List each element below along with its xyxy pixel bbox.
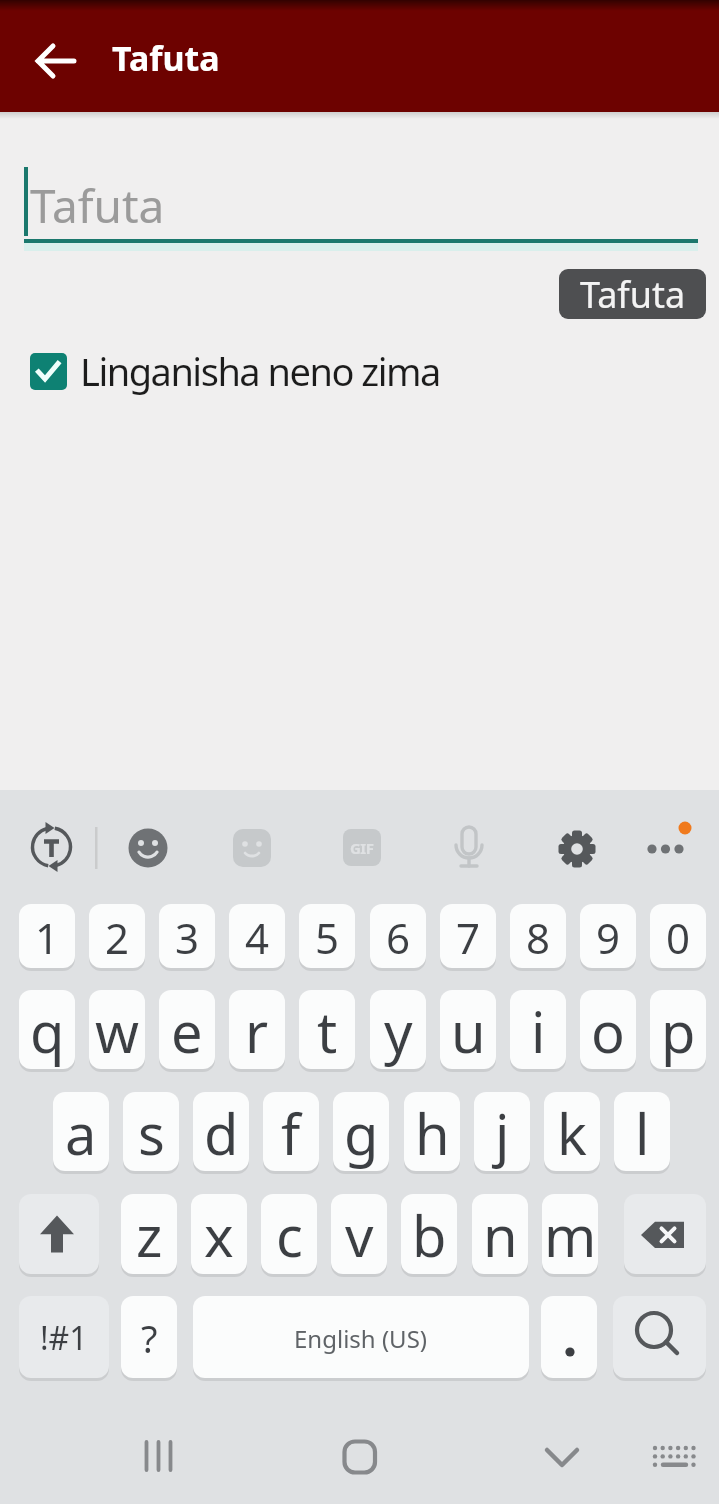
button[interactable] — [613, 1296, 706, 1380]
button[interactable]: i — [510, 990, 566, 1071]
staticText: r — [245, 993, 269, 1069]
button[interactable]: m — [542, 1194, 598, 1276]
button[interactable]: 1 — [19, 904, 75, 970]
staticText: e — [171, 993, 203, 1069]
staticText: d — [204, 1095, 239, 1171]
button[interactable]: c — [261, 1194, 317, 1276]
staticText: 3 — [175, 909, 200, 966]
button[interactable]: 5 — [299, 904, 355, 970]
button[interactable]: b — [401, 1194, 457, 1276]
button[interactable]: Linganisha neno zima — [20, 340, 460, 402]
button[interactable]: p — [650, 990, 706, 1071]
staticText: 8 — [526, 909, 551, 966]
staticText: 9 — [596, 909, 621, 966]
staticText: 4 — [245, 909, 270, 966]
button[interactable]: s — [123, 1092, 179, 1173]
button[interactable]: 6 — [370, 904, 426, 970]
button[interactable]: Tafuta — [559, 269, 706, 319]
button[interactable]: d — [193, 1092, 249, 1173]
staticText: 2 — [105, 909, 130, 966]
staticText: q — [30, 993, 65, 1069]
button[interactable]: ? — [121, 1296, 177, 1380]
button[interactable] — [338, 824, 386, 872]
button[interactable] — [19, 1194, 99, 1276]
button[interactable]: k — [544, 1092, 600, 1173]
staticText: h — [415, 1095, 450, 1171]
button[interactable]: o — [580, 990, 636, 1071]
staticText: l — [635, 1095, 650, 1171]
button[interactable] — [541, 1296, 597, 1380]
staticText: x — [204, 1197, 234, 1273]
button[interactable]: u — [440, 990, 496, 1071]
staticText: Tafuta — [30, 174, 165, 237]
staticText: p — [661, 993, 696, 1069]
staticText: f — [281, 1095, 301, 1171]
staticText: !#1 — [40, 1316, 88, 1360]
button[interactable] — [552, 824, 600, 872]
button[interactable] — [642, 824, 690, 872]
button[interactable]: j — [474, 1092, 530, 1173]
staticText: ? — [141, 1312, 158, 1364]
staticText: c — [276, 1197, 303, 1273]
button[interactable]: q — [19, 990, 75, 1071]
button[interactable] — [445, 824, 493, 872]
button[interactable]: e — [159, 990, 215, 1071]
staticText: v — [345, 1197, 374, 1273]
button[interactable]: 0 — [650, 904, 706, 970]
button[interactable]: 7 — [440, 904, 496, 970]
button[interactable]: l — [614, 1092, 670, 1173]
staticText: Tafuta — [112, 35, 220, 81]
button[interactable] — [624, 1194, 706, 1276]
button[interactable] — [122, 1420, 194, 1492]
staticText: n — [483, 1197, 518, 1273]
staticText: English (US) — [294, 1322, 428, 1355]
staticText: k — [557, 1095, 587, 1171]
staticText: z — [136, 1197, 163, 1273]
staticText: j — [495, 1095, 510, 1171]
button[interactable]: English (US) — [193, 1296, 529, 1380]
staticText: b — [412, 1197, 447, 1273]
button[interactable]: !#1 — [19, 1296, 109, 1380]
button[interactable]: v — [331, 1194, 387, 1276]
button[interactable] — [124, 824, 172, 872]
button[interactable]: f — [263, 1092, 319, 1173]
button[interactable]: 9 — [580, 904, 636, 970]
button[interactable] — [231, 824, 279, 872]
staticText: w — [95, 993, 140, 1069]
button[interactable] — [526, 1420, 598, 1492]
button[interactable]: y — [370, 990, 426, 1071]
button[interactable]: 2 — [89, 904, 145, 970]
button[interactable]: a — [53, 1092, 109, 1173]
button[interactable]: 4 — [229, 904, 285, 970]
staticText: i — [531, 993, 546, 1069]
button[interactable]: h — [404, 1092, 460, 1173]
button[interactable]: 3 — [159, 904, 215, 970]
staticText: t — [317, 993, 338, 1069]
staticText: g — [344, 1095, 379, 1171]
button[interactable]: r — [229, 990, 285, 1071]
button[interactable]: g — [333, 1092, 389, 1173]
button[interactable]: t — [299, 990, 355, 1071]
staticText: u — [451, 993, 486, 1069]
button[interactable] — [20, 25, 92, 97]
staticText: Tafuta — [580, 270, 686, 319]
button[interactable]: 8 — [510, 904, 566, 970]
button[interactable]: z — [121, 1194, 177, 1276]
staticText: 6 — [386, 909, 411, 966]
button[interactable] — [638, 1420, 710, 1492]
button[interactable] — [322, 1420, 394, 1492]
button[interactable]: x — [191, 1194, 247, 1276]
staticText: a — [65, 1095, 97, 1171]
staticText: 5 — [315, 909, 340, 966]
button[interactable] — [28, 824, 76, 872]
button[interactable]: n — [472, 1194, 528, 1276]
staticText: 1 — [35, 909, 60, 966]
staticText: 7 — [456, 909, 481, 966]
staticText: 0 — [666, 909, 691, 966]
staticText: o — [591, 993, 625, 1069]
staticText: GIF — [350, 838, 374, 858]
staticText: m — [544, 1197, 597, 1273]
staticText: Linganisha neno zima — [80, 345, 440, 397]
staticText: y — [384, 993, 413, 1069]
button[interactable]: w — [89, 990, 145, 1071]
